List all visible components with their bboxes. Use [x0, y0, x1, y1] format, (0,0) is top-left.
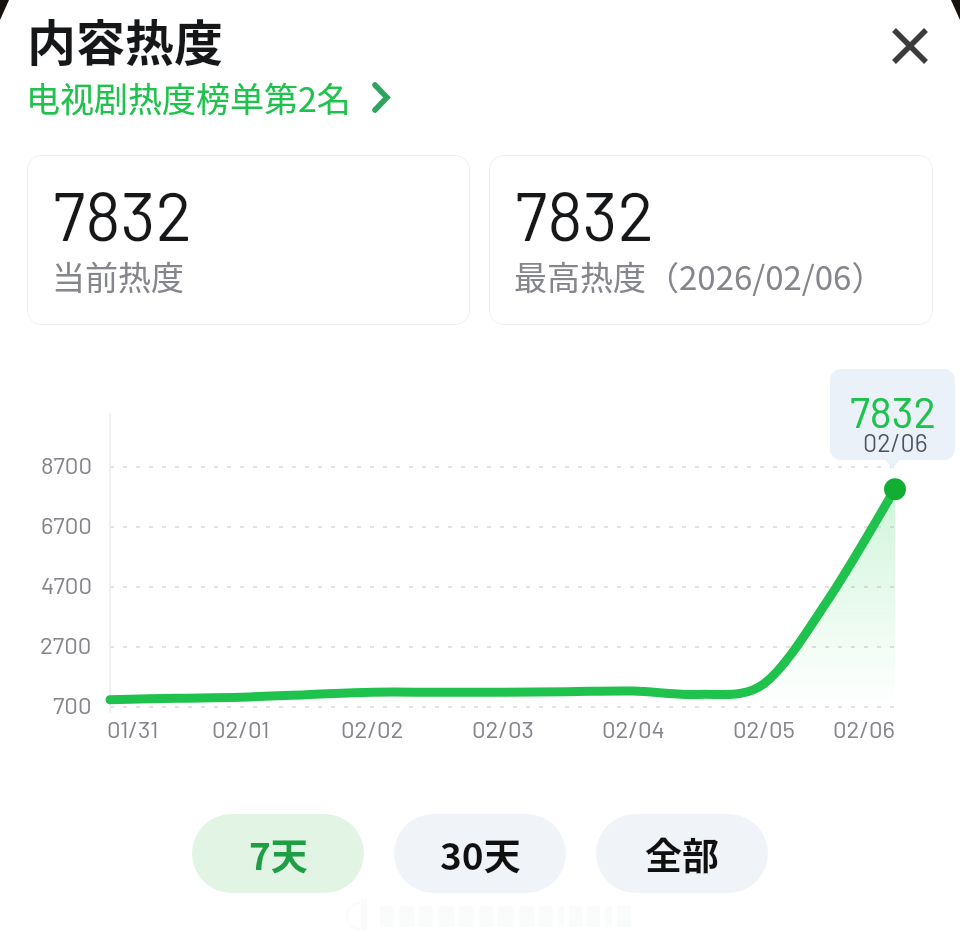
staticText: 30天: [440, 827, 521, 881]
staticText: 最高热度（2026/02/06）: [514, 252, 885, 300]
staticText: 01/31: [107, 714, 159, 743]
button[interactable]: 7832: [489, 155, 933, 325]
staticText: 4700: [41, 570, 92, 599]
button[interactable]: 电视剧热度榜单第2名: [26, 73, 390, 122]
staticText: 内容热度: [27, 4, 224, 75]
staticText: 6700: [41, 510, 92, 539]
staticText: 700: [53, 690, 92, 719]
staticText: 当前热度: [52, 252, 184, 300]
staticText: 7832: [515, 173, 655, 255]
staticText: 02/03: [472, 714, 534, 743]
button[interactable]: 7天: [192, 814, 364, 893]
button[interactable]: 30天: [394, 814, 566, 893]
staticText: 7天: [249, 827, 308, 881]
staticText: 02/05: [733, 714, 795, 743]
button[interactable]: Close: [876, 12, 944, 80]
staticText: 02/06: [833, 714, 895, 743]
staticText: 02/04: [602, 714, 665, 743]
staticText: 7832: [53, 173, 193, 255]
staticText: 全部: [645, 827, 719, 881]
button[interactable]: 全部: [596, 814, 768, 893]
staticText: 7832: [850, 386, 936, 436]
staticText: 2700: [40, 630, 92, 659]
staticText: 02/01: [212, 714, 270, 743]
staticText: 电视剧热度榜单第2名: [26, 73, 351, 122]
button[interactable]: 7832: [27, 155, 470, 325]
staticText: 8700: [41, 450, 92, 479]
staticText: 02/02: [341, 714, 404, 743]
staticText: 02/06: [863, 427, 928, 457]
